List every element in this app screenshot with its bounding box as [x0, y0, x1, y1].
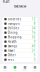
- staticText: More: [33, 69, 37, 71]
- staticText: 8: [34, 22, 36, 25]
- staticText: 21: [32, 49, 36, 52]
- button[interactable]: Shopping: [2, 35, 37, 39]
- button[interactable]: Stats: [10, 66, 20, 71]
- button[interactable]: Home: [0, 66, 10, 71]
- button[interactable]: Savings: [2, 44, 37, 48]
- staticText: Transport: [8, 22, 20, 25]
- staticText: Shopping: [8, 35, 22, 39]
- button[interactable]: Health: [2, 39, 37, 44]
- staticText: 5: [34, 53, 36, 57]
- staticText: Home: [3, 69, 7, 71]
- staticText: Groceries: [8, 17, 21, 21]
- staticText: Cards: [22, 69, 27, 71]
- staticText: 3: [34, 58, 36, 61]
- button[interactable]: More: [30, 66, 40, 71]
- button[interactable]: Utilities: [2, 26, 37, 30]
- button[interactable]: Fees: [2, 57, 37, 62]
- staticText: Health: [8, 40, 17, 43]
- staticText: Dining: [8, 31, 18, 34]
- button[interactable]: Dining: [2, 30, 37, 35]
- staticText: Utilities: [8, 26, 19, 30]
- staticText: Fees: [8, 58, 14, 61]
- staticText: Stats: [13, 69, 16, 71]
- button[interactable]: Groceries: [2, 17, 37, 21]
- staticText: 16: [32, 31, 36, 34]
- staticText: Travel: [8, 49, 15, 52]
- staticText: 32: [32, 35, 36, 39]
- button[interactable]: Transport: [2, 21, 37, 26]
- staticText: 9: [34, 40, 36, 43]
- staticText: 12: [32, 17, 36, 21]
- staticText: Savings: [8, 44, 17, 48]
- button[interactable]: Other: [2, 53, 37, 57]
- button[interactable]: Cards: [20, 66, 30, 71]
- staticText: 45: [32, 44, 36, 48]
- button[interactable]: Travel: [2, 48, 37, 53]
- staticText: Overview: [14, 5, 26, 8]
- staticText: 9:41: [3, 0, 10, 4]
- staticText: 24: [32, 26, 36, 30]
- staticText: Other: [8, 53, 16, 57]
